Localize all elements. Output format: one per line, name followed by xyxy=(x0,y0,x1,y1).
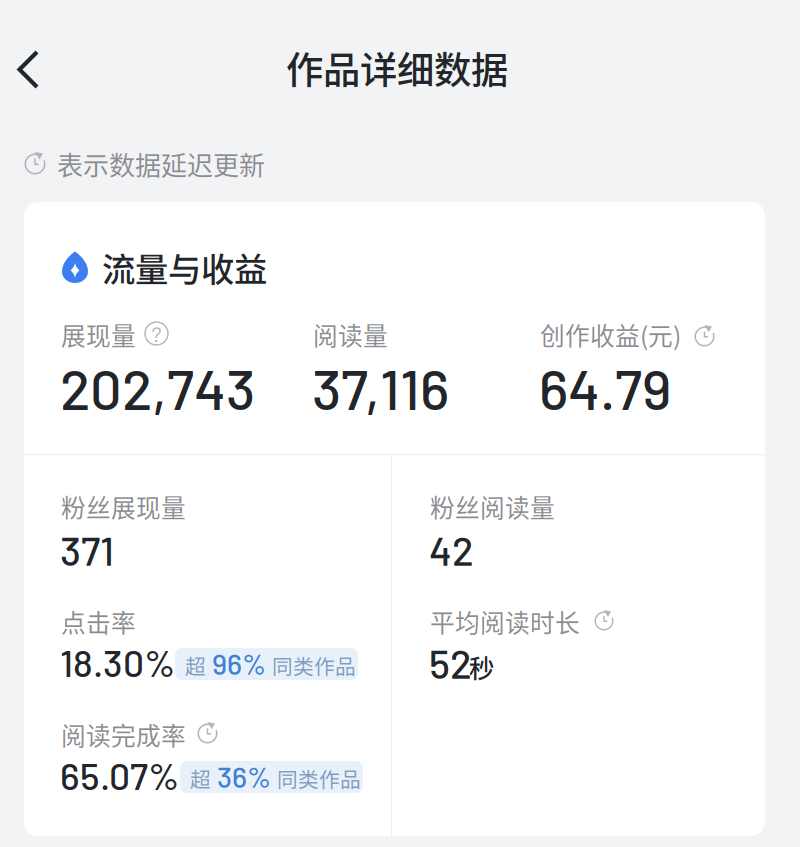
staticText: ? xyxy=(151,320,161,347)
staticText: 96% xyxy=(212,646,266,680)
staticText: 52 xyxy=(429,639,472,687)
staticText: 点击率 xyxy=(61,604,136,639)
staticText: 202,743 xyxy=(60,354,255,421)
staticText: 64.79 xyxy=(539,354,671,421)
staticText: 平均阅读时长 xyxy=(430,604,580,639)
staticText: 同类作品 xyxy=(277,763,361,793)
staticText: 创作收益(元) xyxy=(540,317,681,352)
staticText: 37,116 xyxy=(312,354,449,421)
staticText: 作品详细数据 xyxy=(286,41,508,95)
staticText: 371 xyxy=(60,526,114,574)
staticText: 阅读量 xyxy=(313,317,388,352)
staticText: 展现量 xyxy=(61,317,136,352)
staticText: 粉丝展现量 xyxy=(61,489,186,524)
staticText: 表示数据延迟更新 xyxy=(57,145,265,183)
staticText: 秒 xyxy=(469,648,494,685)
staticText: 阅读完成率 xyxy=(61,717,186,752)
staticText: 18.30% xyxy=(60,640,175,684)
staticText: 42 xyxy=(429,526,474,574)
staticText: 流量与收益 xyxy=(102,243,267,291)
staticText: 超 xyxy=(185,650,206,680)
staticText: 粉丝阅读量 xyxy=(430,489,555,524)
staticText: 36% xyxy=(217,759,271,793)
button[interactable]: Back xyxy=(0,0,74,84)
staticText: 超 xyxy=(190,763,211,793)
staticText: 65.07% xyxy=(60,753,179,797)
staticText: 同类作品 xyxy=(272,650,356,680)
